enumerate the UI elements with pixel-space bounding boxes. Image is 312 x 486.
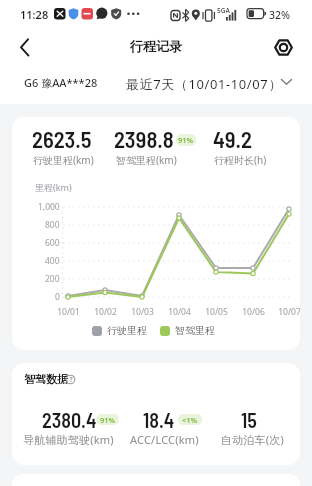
staticText: G6 豫AA***28: [24, 75, 98, 90]
staticText: 智驾数据: [24, 372, 68, 386]
staticText: 10/07: [278, 306, 300, 318]
staticText: 行驶里程: [107, 324, 147, 337]
staticText: 2623.5: [32, 125, 92, 152]
staticText: 10/06: [242, 306, 265, 318]
staticText: 32%: [269, 8, 290, 22]
staticText: 5GA: [217, 6, 230, 15]
staticText: 800: [45, 219, 60, 231]
button[interactable]: 行驶里程: [92, 324, 215, 337]
staticText: 18.4: [143, 408, 175, 432]
staticText: 0: [55, 291, 60, 303]
staticText: 91%: [100, 415, 116, 425]
staticText: 自动泊车(次): [221, 432, 284, 447]
staticText: 49.2: [213, 125, 252, 152]
staticText: 导航辅助驾驶(km): [23, 432, 114, 447]
staticText: 2380.4: [42, 408, 97, 432]
button[interactable]: [269, 33, 298, 62]
staticText: ACC/LCC(km): [130, 432, 199, 447]
staticText: 最近7天（10/01-10/07）: [126, 75, 282, 93]
staticText: 10/02: [94, 306, 117, 318]
staticText: 里程(km): [35, 181, 72, 193]
staticText: 智驾里程(km): [116, 153, 177, 167]
staticText: 行驶里程(km): [33, 153, 94, 167]
staticText: 10/04: [168, 306, 191, 318]
button[interactable]: ?: [64, 373, 77, 386]
staticText: 行程记录: [130, 38, 182, 54]
staticText: 600: [45, 237, 60, 249]
staticText: 1,000: [38, 201, 60, 213]
staticText: 400: [45, 255, 60, 267]
staticText: 智驾里程: [175, 324, 215, 337]
staticText: 91%: [178, 135, 194, 145]
staticText: 15: [241, 408, 257, 432]
staticText: 10/01: [57, 306, 80, 318]
staticText: 10/03: [131, 306, 154, 318]
staticText: 11:28: [20, 7, 49, 22]
button[interactable]: [10, 34, 38, 62]
staticText: 行程时长(h): [214, 153, 267, 167]
button[interactable]: G6 豫AA***28: [14, 66, 88, 96]
staticText: 200: [45, 273, 60, 285]
staticText: ?: [69, 375, 73, 384]
staticText: 2398.8: [114, 125, 174, 152]
button[interactable]: 最近7天（10/01-10/07）: [118, 66, 274, 96]
staticText: <1%: [182, 415, 198, 425]
staticText: 10/05: [205, 306, 228, 318]
